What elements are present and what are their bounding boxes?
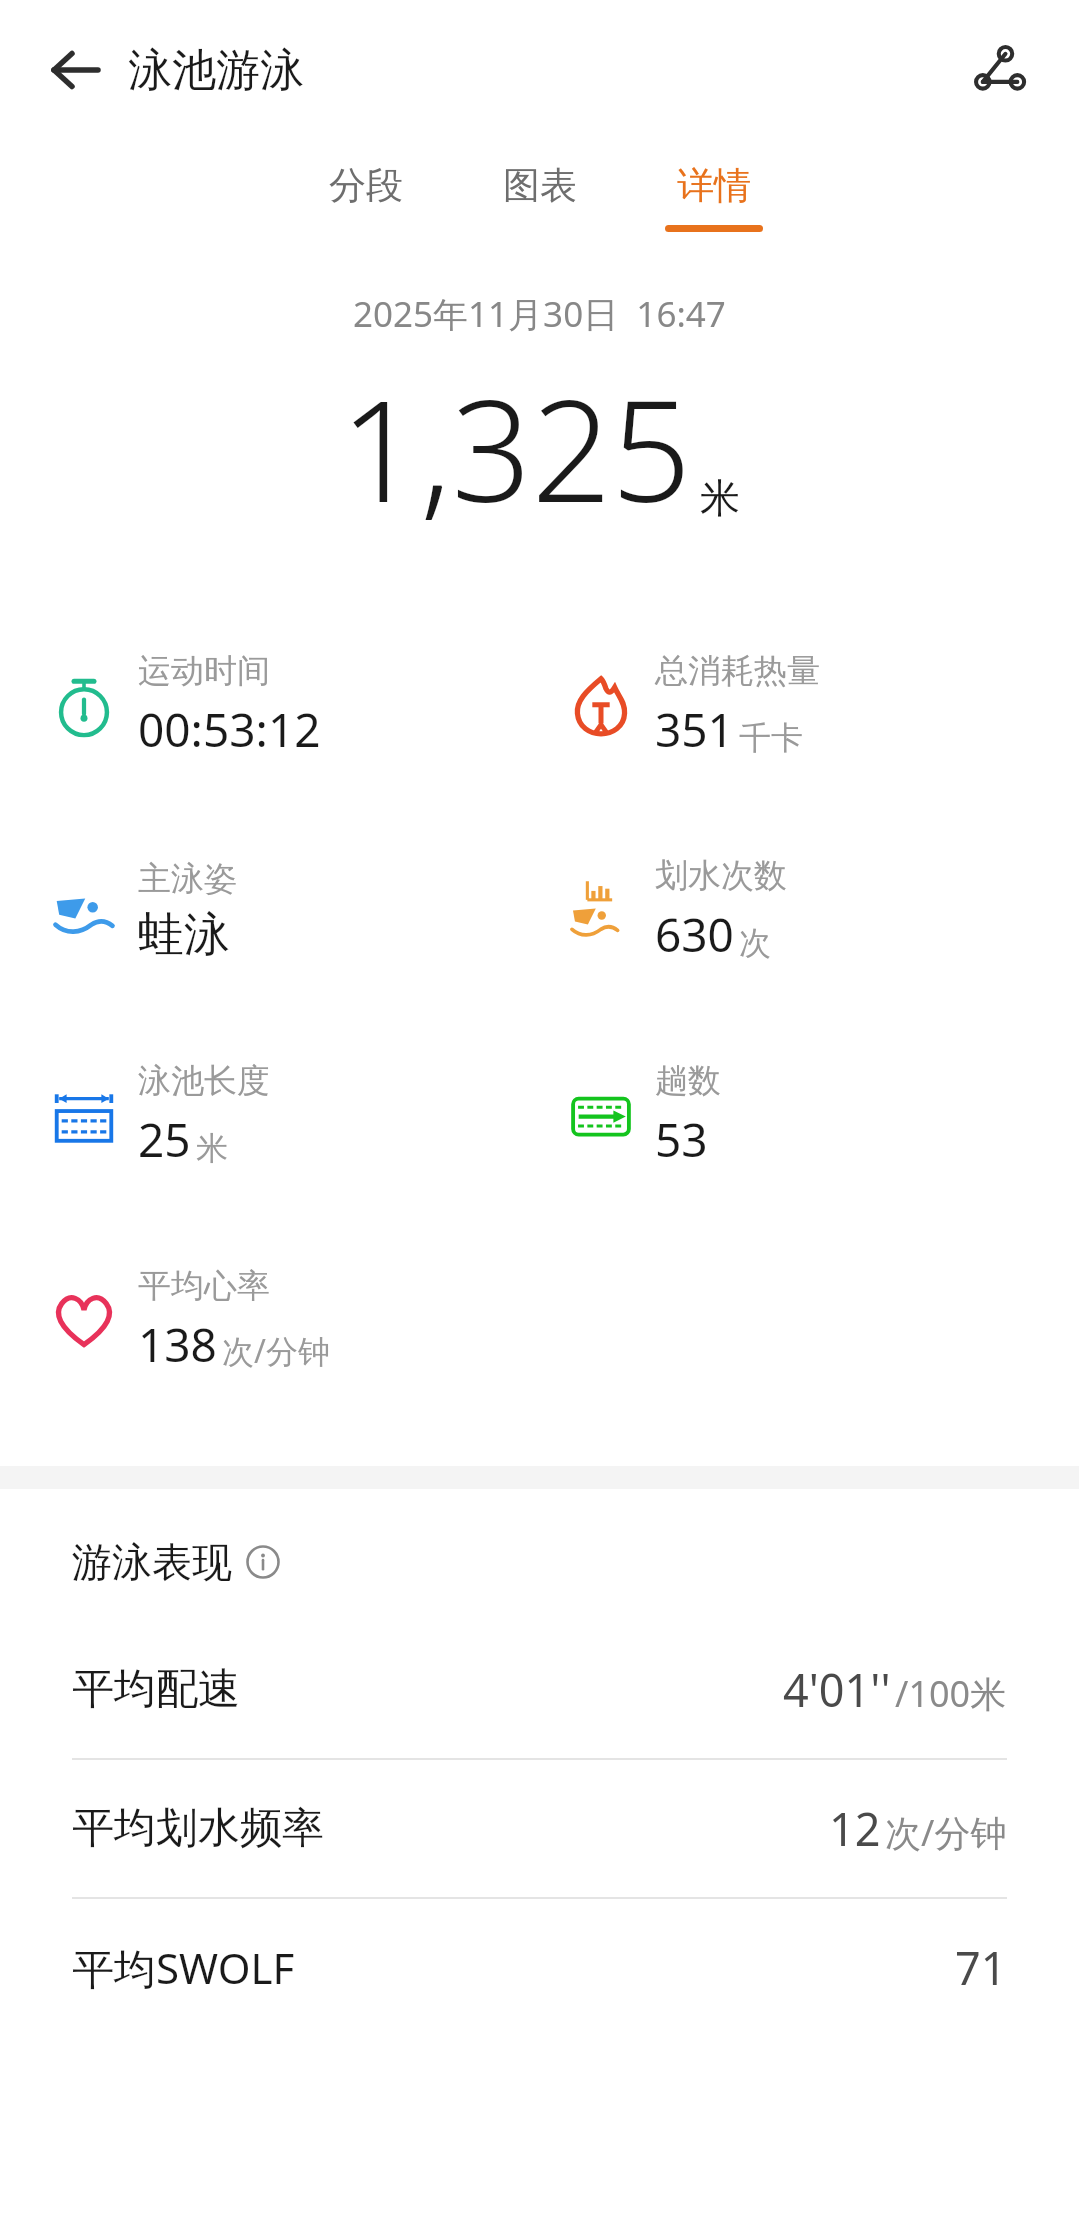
staticText: 4'01''	[783, 1659, 891, 1720]
staticText: 12	[829, 1798, 881, 1859]
staticText: 图表	[503, 162, 577, 209]
button[interactable]: 平均SWOLF	[0, 1899, 1079, 2036]
staticText: 平均划水频率	[72, 1802, 324, 1855]
staticText: 71	[955, 1937, 1007, 1998]
staticText: 划水次数	[655, 855, 787, 897]
button[interactable]: 游泳表现	[72, 1537, 1079, 1587]
staticText: 趟数	[655, 1060, 721, 1102]
button[interactable]: 平均划水频率	[0, 1760, 1079, 1897]
staticText: 25	[138, 1108, 191, 1171]
staticText: 平均心率	[138, 1265, 270, 1307]
button[interactable]: 图表	[476, 140, 604, 248]
staticText: 总消耗热量	[655, 650, 820, 692]
staticText: 蛙泳	[138, 906, 230, 964]
button[interactable]: 平均心率	[0, 1218, 539, 1423]
staticText: 平均配速	[72, 1663, 240, 1716]
button[interactable]: Share	[957, 28, 1041, 112]
staticText: 详情	[677, 162, 751, 209]
staticText: 53	[655, 1108, 708, 1171]
staticText: 米	[196, 1128, 228, 1168]
button[interactable]: Back	[40, 34, 112, 106]
staticText: 次/分钟	[222, 1329, 330, 1373]
staticText: 游泳表现	[72, 1537, 232, 1587]
staticText: 138	[138, 1313, 217, 1376]
button[interactable]: 分段	[302, 140, 430, 248]
staticText: 千卡	[739, 718, 803, 758]
button[interactable]: 划水次数	[539, 808, 1079, 1013]
staticText: 平均SWOLF	[72, 1939, 295, 1996]
staticText: /100米	[895, 1669, 1007, 1718]
staticText: 次	[739, 923, 771, 963]
staticText: 351	[655, 698, 734, 761]
staticText: 泳池游泳	[128, 43, 304, 98]
button[interactable]: 平均配速	[0, 1621, 1079, 1758]
staticText: 主泳姿	[138, 858, 237, 900]
button[interactable]: 泳池长度	[0, 1013, 539, 1218]
staticText: 2025年11月30日 16:47	[353, 290, 726, 338]
staticText: 次/分钟	[885, 1808, 1007, 1857]
staticText: 630	[655, 903, 734, 966]
button[interactable]: 运动时间	[0, 603, 539, 808]
button[interactable]: 趟数	[539, 1013, 1079, 1218]
staticText: 泳池长度	[138, 1060, 270, 1102]
staticText: 运动时间	[138, 650, 270, 692]
button[interactable]: 主泳姿	[0, 808, 539, 1013]
staticText: 00:53:12	[138, 698, 321, 761]
button[interactable]: 详情	[650, 140, 778, 248]
staticText: 米	[700, 473, 740, 523]
other: Info	[246, 1545, 280, 1579]
staticText: 1,325	[340, 352, 692, 543]
staticText: 分段	[329, 162, 403, 209]
button[interactable]: 总消耗热量	[539, 603, 1079, 808]
